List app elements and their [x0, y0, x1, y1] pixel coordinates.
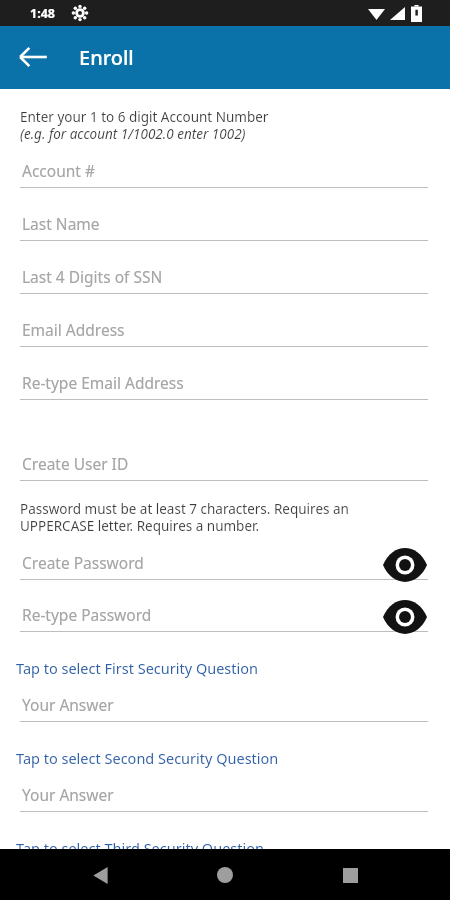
button[interactable]: Show re-typed password: [383, 595, 427, 639]
button[interactable]: [20, 365, 428, 401]
staticText: Enter your 1 to 6 digit Account Number: [20, 108, 269, 126]
button[interactable]: [20, 597, 428, 633]
button[interactable]: Home: [201, 851, 249, 899]
staticText: Re-type Email Address: [22, 372, 184, 393]
staticText: Create Password: [22, 552, 144, 573]
staticText: Account #: [22, 160, 95, 181]
staticText: Last 4 Digits of SSN: [22, 266, 163, 287]
staticText: 1:48: [30, 5, 55, 22]
button[interactable]: [20, 153, 428, 189]
button[interactable]: [20, 206, 428, 242]
button[interactable]: [20, 545, 428, 581]
button[interactable]: Recent apps: [326, 851, 374, 899]
button[interactable]: [14, 743, 344, 769]
staticText: Enroll: [79, 44, 134, 71]
button[interactable]: [14, 833, 344, 859]
staticText: Your Answer: [22, 784, 114, 805]
staticText: Last Name: [22, 213, 100, 234]
button[interactable]: [20, 312, 428, 348]
button[interactable]: [20, 777, 428, 813]
staticText: UPPERCASE letter. Requires a number.: [20, 517, 260, 535]
staticText: Tap to select First Security Question: [16, 658, 259, 678]
button[interactable]: Show password: [383, 543, 427, 587]
staticText: Tap to select Third Security Question: [16, 838, 264, 858]
staticText: Your Answer: [22, 694, 114, 715]
staticText: (e.g. for account 1/1002.0 enter 1002): [20, 125, 246, 143]
staticText: Password must be at least 7 characters. …: [20, 500, 349, 518]
button[interactable]: [14, 653, 344, 679]
button[interactable]: [20, 687, 428, 723]
button[interactable]: [20, 259, 428, 295]
staticText: Tap to select Second Security Question: [16, 748, 279, 768]
staticText: Create User ID: [22, 453, 129, 474]
button[interactable]: Back: [76, 851, 124, 899]
button[interactable]: [20, 446, 428, 482]
button[interactable]: Back: [10, 34, 56, 80]
staticText: Email Address: [22, 319, 125, 340]
staticText: Re-type Password: [22, 604, 152, 625]
